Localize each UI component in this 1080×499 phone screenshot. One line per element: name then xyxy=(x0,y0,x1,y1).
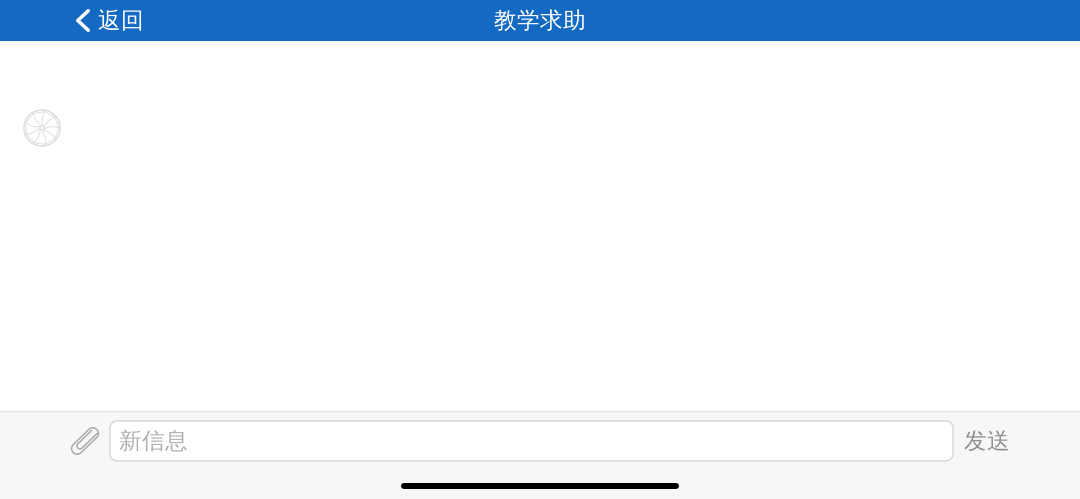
button[interactable]: 返回 xyxy=(0,0,160,41)
staticText: 新信息 xyxy=(119,427,188,455)
staticText: 发送 xyxy=(964,427,1010,455)
button[interactable]: 新信息 xyxy=(110,421,953,461)
staticText: 返回 xyxy=(98,7,144,34)
button[interactable]: 添加附件 xyxy=(60,421,110,461)
button[interactable]: 发送 xyxy=(953,421,1021,461)
staticText: 教学求助 xyxy=(494,7,586,34)
